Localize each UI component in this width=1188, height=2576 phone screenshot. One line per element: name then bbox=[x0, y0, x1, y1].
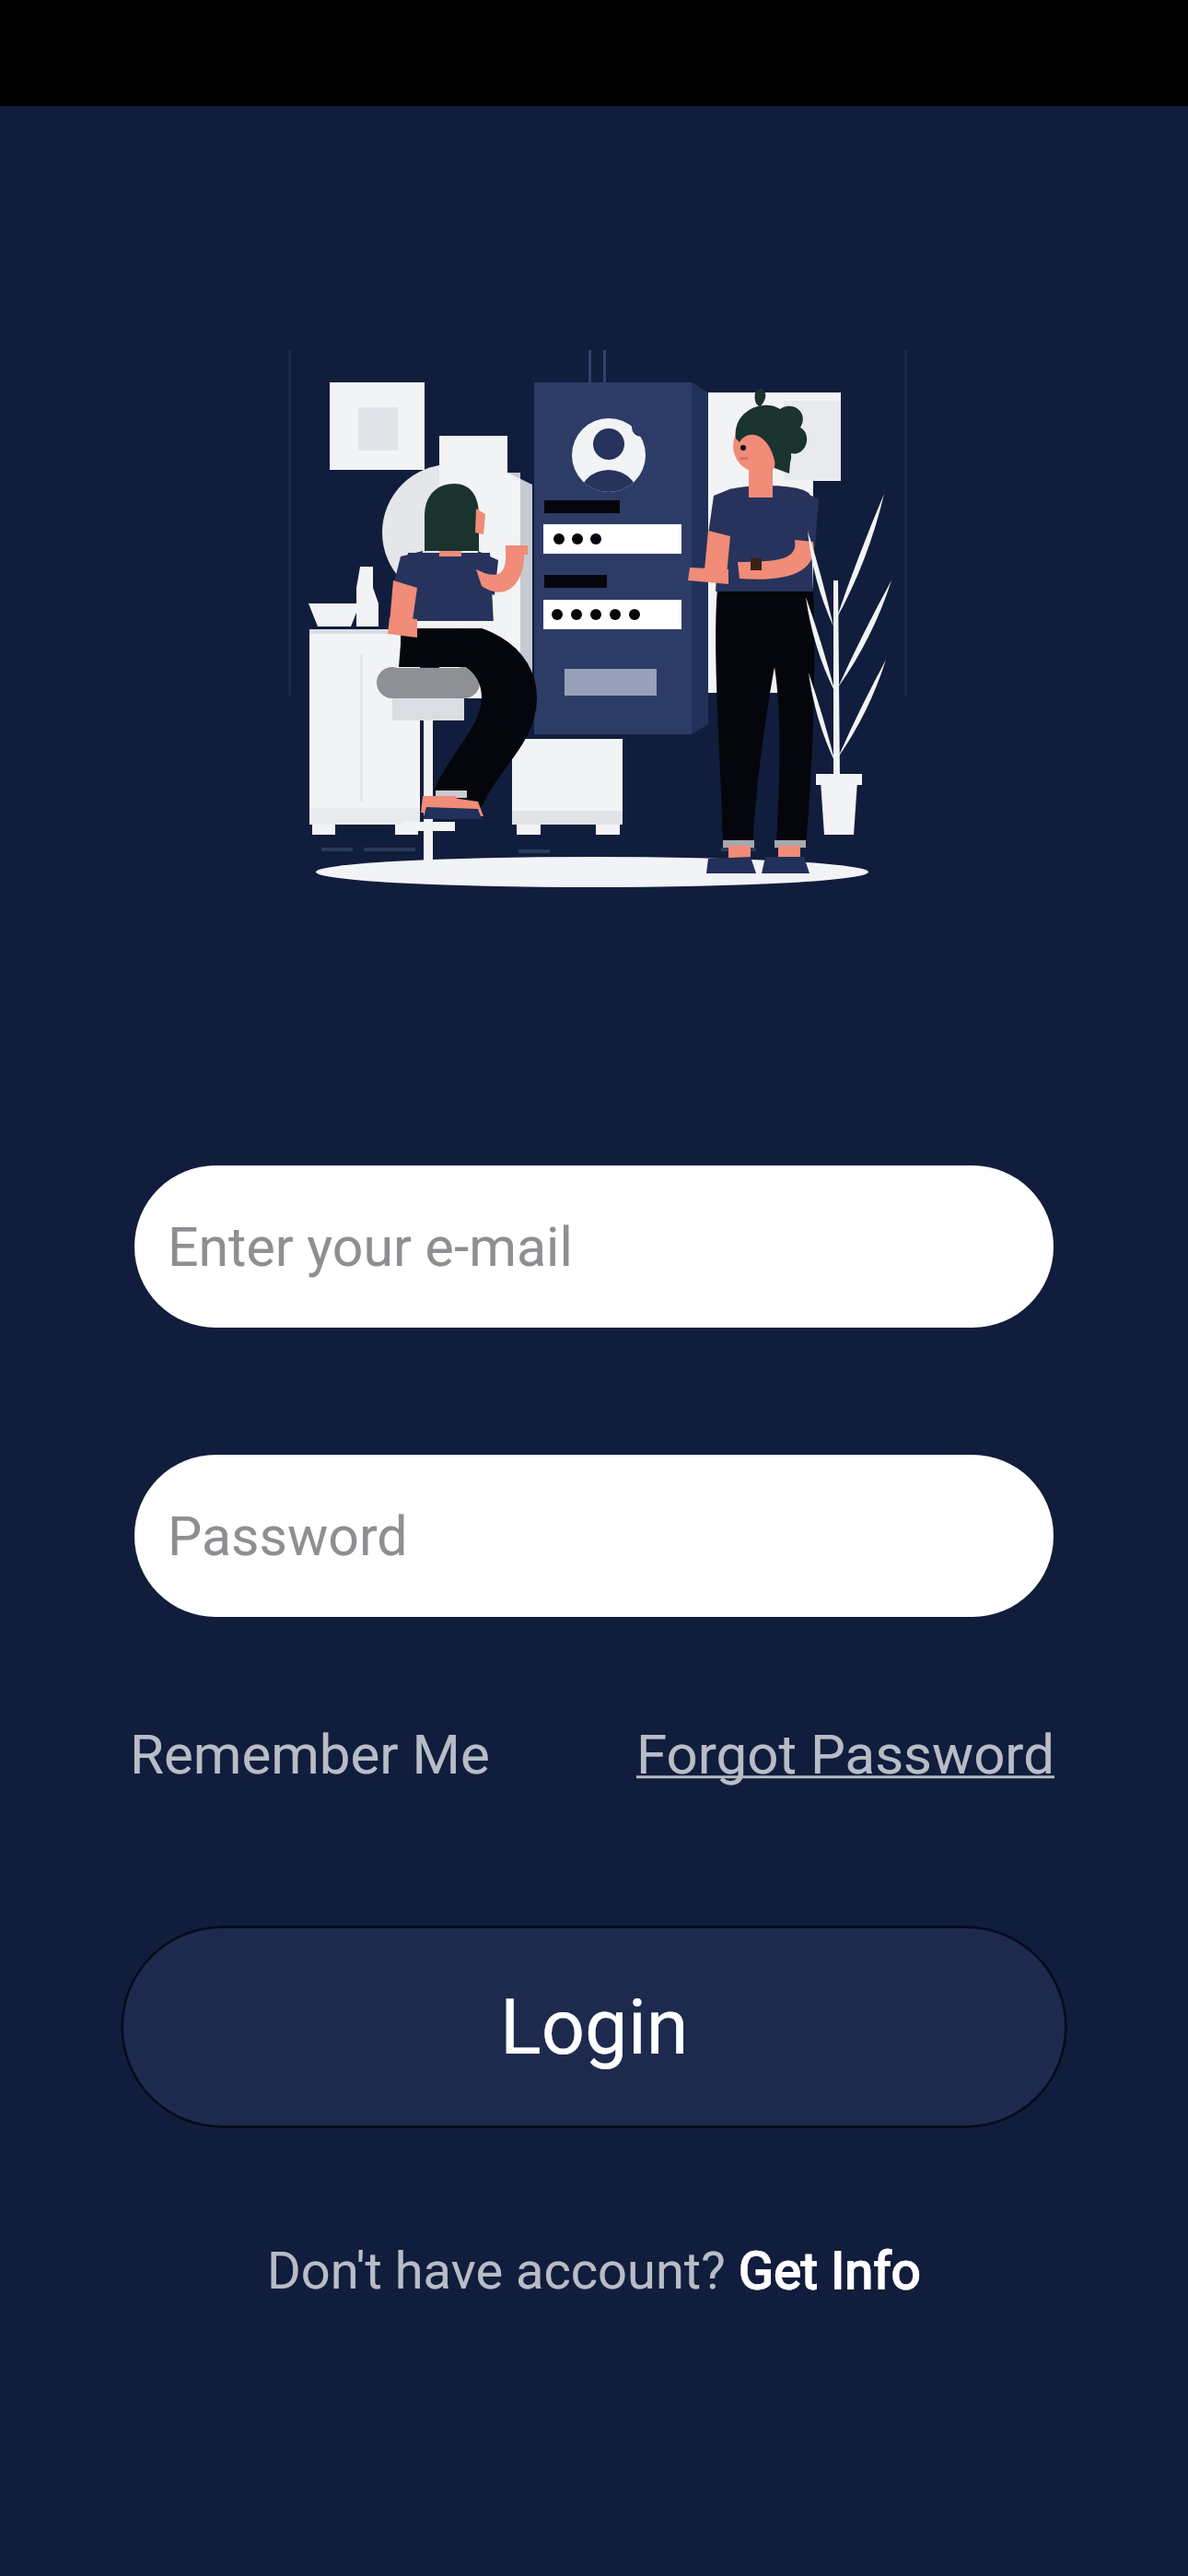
other: Login illustration bbox=[288, 350, 907, 903]
staticText: Enter your e-mail bbox=[168, 1215, 573, 1279]
button[interactable]: Get Info bbox=[739, 2241, 921, 2301]
button[interactable]: Login bbox=[121, 1926, 1067, 2128]
staticText: Forgot Password bbox=[636, 1722, 1054, 1786]
staticText: Get Info bbox=[739, 2241, 921, 2301]
button[interactable]: Password field bbox=[134, 1455, 1054, 1617]
staticText: Don't have account? bbox=[267, 2241, 739, 2301]
button[interactable]: Email address field bbox=[134, 1165, 1054, 1328]
staticText: Password bbox=[168, 1505, 408, 1568]
staticText: Login bbox=[500, 1983, 689, 2072]
button[interactable]: Remember Me bbox=[130, 1722, 490, 1786]
staticText: Remember Me bbox=[130, 1722, 490, 1786]
button[interactable]: Forgot Password bbox=[636, 1722, 1054, 1786]
